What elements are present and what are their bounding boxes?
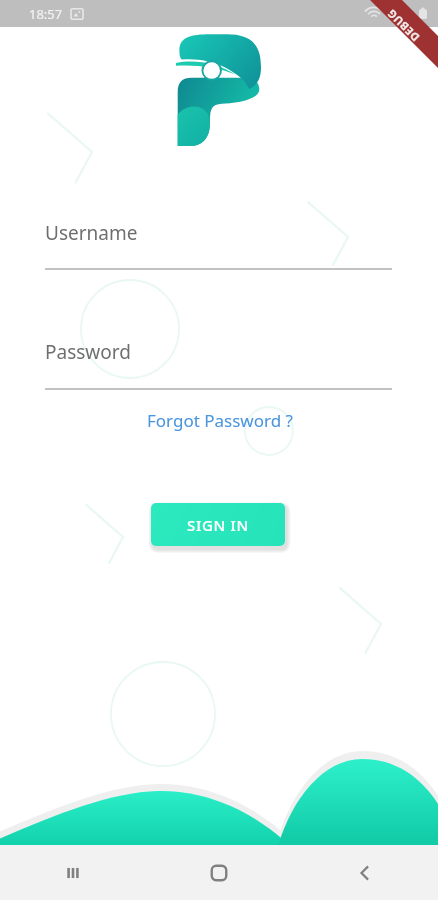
staticText: SIGN IN <box>187 515 249 535</box>
staticText: Password <box>45 339 131 365</box>
button[interactable]: Home <box>146 845 292 900</box>
button[interactable]: Recents <box>0 845 146 900</box>
staticText: DEBUG <box>384 6 422 45</box>
button[interactable]: Forgot Password ? <box>145 407 295 434</box>
button[interactable]: SIGN IN <box>151 503 285 546</box>
button[interactable]: Back <box>292 845 438 900</box>
staticText: 18:57 <box>29 5 63 23</box>
staticText: Username <box>45 220 138 246</box>
staticText: Forgot Password ? <box>147 409 293 432</box>
